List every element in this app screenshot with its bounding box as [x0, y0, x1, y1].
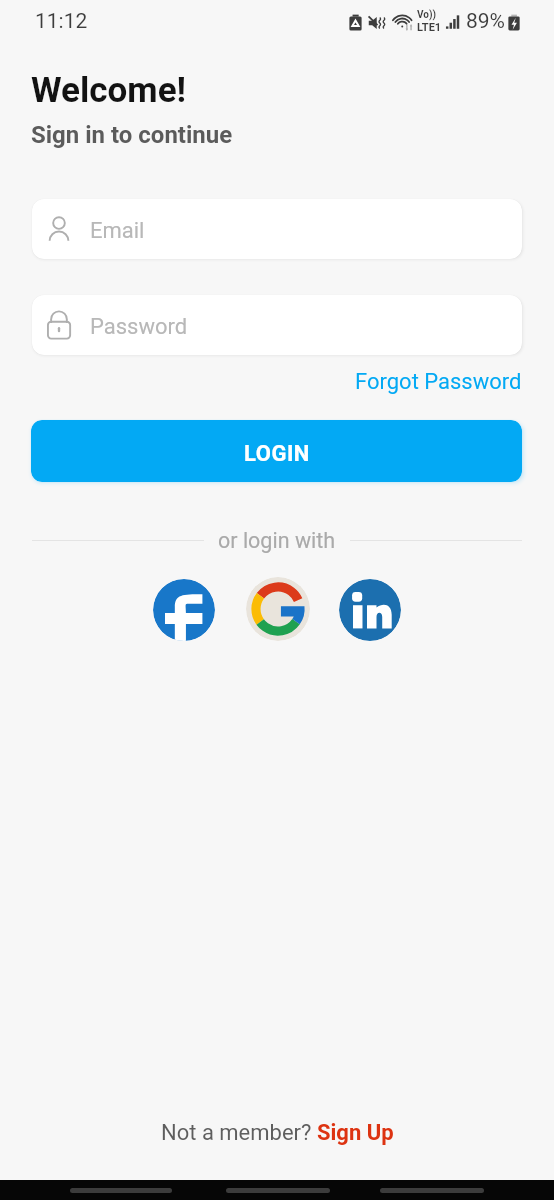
staticText: LOGIN [244, 441, 310, 467]
staticText: Not a member? [161, 1120, 317, 1146]
staticText: Email [90, 218, 145, 244]
staticText: or login with [218, 528, 336, 553]
button[interactable]: Email [32, 199, 522, 259]
staticText: 11:12 [35, 9, 88, 34]
button[interactable]: Password [32, 295, 522, 355]
button[interactable]: Sign in with LinkedIn [339, 579, 401, 641]
button[interactable]: Sign in with Google [246, 577, 310, 641]
button[interactable]: Sign Up [317, 1120, 394, 1146]
staticText: Welcome! [31, 70, 187, 111]
staticText: Sign in to continue [31, 121, 233, 149]
staticText: Vo)) [417, 9, 437, 21]
staticText: Password [90, 314, 188, 340]
button[interactable]: LOGIN [31, 420, 522, 482]
button[interactable]: Sign in with Facebook [153, 579, 215, 641]
staticText: LTE1 [417, 21, 442, 34]
staticText: 89% [466, 9, 505, 34]
button[interactable]: Forgot Password [355, 369, 522, 395]
